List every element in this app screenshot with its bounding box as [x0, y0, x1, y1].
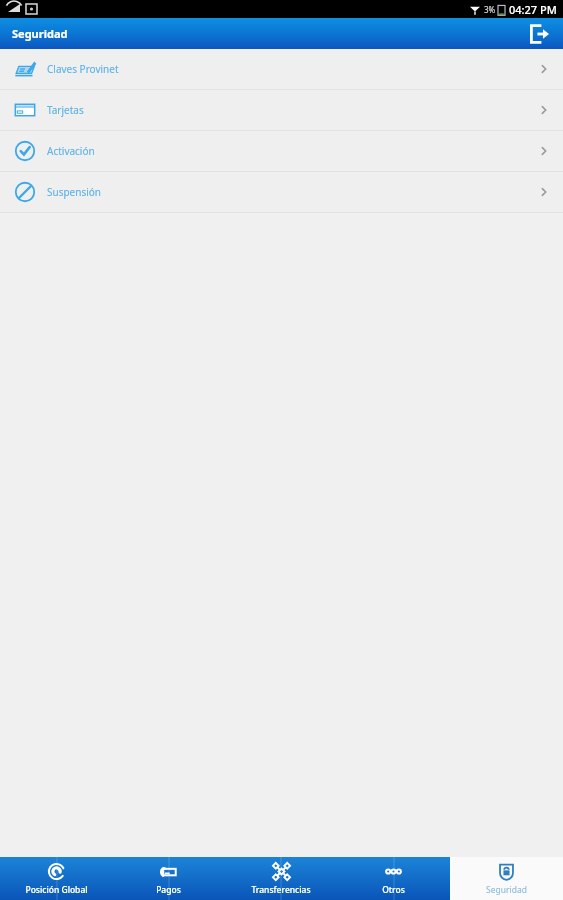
- staticText: Seguridad: [486, 884, 527, 896]
- staticText: Otros: [382, 884, 405, 896]
- button[interactable]: Otros: [337, 857, 450, 900]
- staticText: 04:27 PM: [509, 2, 557, 17]
- button[interactable]: Seguridad: [450, 857, 563, 900]
- button[interactable]: Suspensión: [0, 172, 563, 212]
- button[interactable]: Tarjetas: [0, 90, 563, 130]
- button[interactable]: Transferencias: [224, 857, 337, 900]
- staticText: Seguridad: [12, 26, 68, 41]
- button[interactable]: Activación: [0, 131, 563, 171]
- staticText: Transferencias: [251, 884, 311, 896]
- button[interactable]: Cerrar sesión: [515, 18, 563, 49]
- button[interactable]: Claves Provinet: [0, 49, 563, 89]
- staticText: Activación: [47, 144, 95, 158]
- staticText: Tarjetas: [47, 103, 84, 117]
- staticText: Claves Provinet: [47, 62, 119, 76]
- staticText: 3%: [484, 4, 496, 15]
- button[interactable]: Pagos: [112, 857, 224, 900]
- staticText: Pagos: [156, 884, 181, 896]
- staticText: Suspensión: [47, 185, 102, 199]
- staticText: Posición Global: [25, 884, 88, 896]
- button[interactable]: Posición Global: [0, 857, 112, 900]
